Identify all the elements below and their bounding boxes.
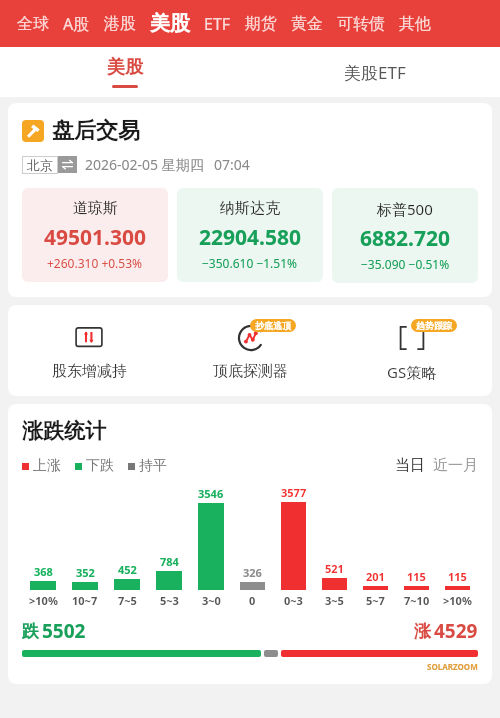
staticText: 0~3 [284, 593, 303, 608]
staticText: 黄金 [291, 14, 323, 34]
button[interactable]: 近一月 [433, 456, 478, 475]
staticText: 期货 [245, 14, 277, 34]
staticText: 368 [34, 564, 53, 579]
staticText: 3~0 [202, 593, 221, 608]
button[interactable]: Switch timezone [61, 158, 74, 171]
staticText: 涨跌统计 [22, 418, 106, 444]
staticText: 顶底探测器 [213, 362, 288, 381]
staticText: 0 [249, 593, 256, 608]
staticText: 49501.300 [44, 223, 146, 252]
staticText: 港股 [104, 14, 136, 34]
button[interactable]: 美股ETF [250, 47, 500, 97]
staticText: 3546 [198, 486, 224, 501]
staticText: −35.090 −0.51% [361, 256, 450, 272]
button[interactable]: 趋势跟踪 [331, 319, 492, 382]
staticText: 北京 [27, 157, 53, 173]
staticText: 3~5 [325, 593, 344, 608]
button[interactable]: 美股 [0, 47, 250, 97]
button[interactable]: 当日 [395, 456, 425, 475]
staticText: 趋势跟踪 [416, 320, 452, 331]
staticText: 115 [407, 569, 426, 584]
staticText: 其他 [399, 14, 431, 34]
staticText: 抄底逃顶 [255, 320, 291, 331]
staticText: 7~5 [118, 593, 137, 608]
button[interactable]: A股 [56, 13, 97, 35]
staticText: 持平 [139, 457, 167, 475]
staticText: 5~3 [160, 593, 179, 608]
staticText: 201 [366, 569, 385, 584]
staticText: SOLARZOOM [427, 661, 478, 672]
staticText: 10~7 [72, 593, 98, 608]
staticText: 纳斯达克 [220, 199, 280, 218]
staticText: 5502 [42, 618, 86, 644]
button[interactable]: 其他 [392, 14, 438, 34]
button[interactable]: 全球 [10, 14, 56, 34]
button[interactable]: 港股 [97, 14, 143, 34]
staticText: 近一月 [433, 456, 478, 475]
staticText: 股东增减持 [52, 362, 127, 381]
staticText: 盘后交易 [52, 117, 140, 145]
staticText: 美股 [150, 11, 190, 36]
staticText: 784 [160, 554, 179, 569]
button[interactable]: 股东增减持 [8, 319, 170, 381]
staticText: 326 [243, 565, 262, 580]
button[interactable]: 美股 [143, 11, 197, 36]
staticText: 6882.720 [360, 224, 450, 253]
button[interactable]: 期货 [238, 14, 284, 34]
staticText: 07:04 [214, 155, 250, 174]
staticText: 美股ETF [344, 61, 406, 84]
staticText: 当日 [395, 456, 425, 475]
button[interactable]: 标普500 [332, 188, 478, 283]
staticText: 5~7 [366, 593, 385, 608]
staticText: 4529 [434, 618, 478, 644]
staticText: 涨 [414, 621, 431, 642]
staticText: 上涨 [33, 457, 61, 475]
staticText: 7~10 [404, 593, 430, 608]
staticText: 22904.580 [199, 223, 301, 252]
button[interactable]: ETF [197, 13, 238, 35]
staticText: 全球 [17, 14, 49, 34]
staticText: 452 [118, 562, 137, 577]
staticText: 标普500 [377, 199, 433, 219]
staticText: 下跌 [86, 457, 114, 475]
staticText: 可转债 [337, 14, 385, 34]
staticText: 115 [448, 569, 467, 584]
staticText: GS策略 [387, 362, 437, 382]
staticText: 352 [76, 565, 95, 580]
staticText: A股 [63, 13, 90, 35]
staticText: 3577 [281, 485, 307, 500]
button[interactable]: 可转债 [330, 14, 392, 34]
staticText: 道琼斯 [73, 199, 118, 218]
staticText: +260.310 +0.53% [47, 255, 143, 271]
button[interactable]: 黄金 [284, 14, 330, 34]
button[interactable]: 抄底逃顶 [170, 319, 331, 381]
button[interactable]: 道琼斯 [22, 188, 168, 282]
button[interactable]: 纳斯达克 [177, 188, 323, 282]
staticText: >10% [443, 593, 472, 608]
staticText: 美股 [107, 56, 143, 79]
staticText: 521 [325, 561, 344, 576]
staticText: ETF [204, 13, 231, 35]
staticText: −350.610 −1.51% [202, 255, 298, 271]
staticText: 跌 [22, 621, 39, 642]
staticText: 2026-02-05 星期四 [85, 155, 204, 174]
staticText: >10% [29, 593, 58, 608]
